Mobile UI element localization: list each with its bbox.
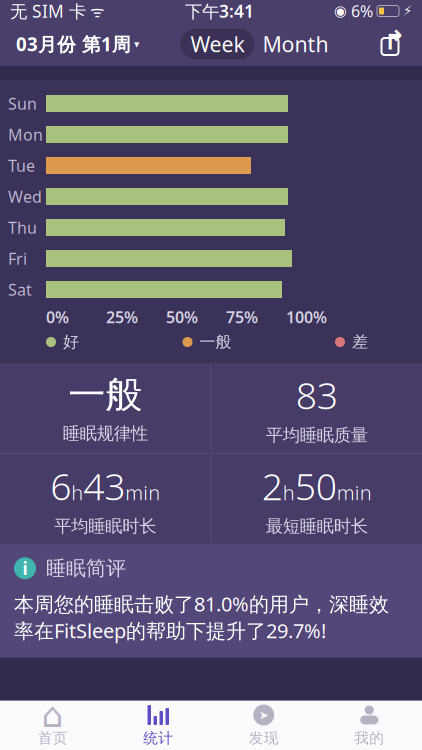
- staticText: 无 SIM 卡: [10, 0, 86, 22]
- staticText: 6%: [351, 0, 373, 22]
- staticText: 0%: [46, 306, 69, 328]
- staticText: Tue: [8, 155, 35, 176]
- staticText: 睡眠规律性: [63, 423, 148, 444]
- staticText: Wed: [8, 186, 42, 207]
- staticText: 50%: [166, 306, 198, 328]
- staticText: Sat: [8, 279, 32, 300]
- staticText: ➤: [259, 708, 269, 722]
- staticText: 下午3:41: [185, 0, 254, 22]
- staticText: min: [337, 479, 372, 506]
- staticText: 我的: [354, 729, 384, 747]
- staticText: i: [22, 557, 27, 580]
- staticText: 平均睡眠时长: [54, 516, 156, 537]
- staticText: ᯤ: [86, 0, 105, 22]
- staticText: h: [283, 479, 295, 506]
- staticText: h: [71, 479, 83, 506]
- staticText: 25%: [106, 306, 138, 328]
- staticText: 50: [295, 461, 337, 511]
- staticText: 统计: [143, 729, 173, 747]
- staticText: 一般: [68, 372, 142, 418]
- button[interactable]: 分享: [368, 25, 412, 63]
- staticText: ▾: [134, 38, 139, 50]
- staticText: 发现: [249, 729, 279, 747]
- button[interactable]: Week: [180, 29, 254, 59]
- button[interactable]: ➤: [211, 701, 316, 750]
- button[interactable]: 统计: [105, 701, 211, 750]
- staticText: 03月份 第1周: [16, 32, 131, 56]
- staticText: Month: [262, 30, 328, 58]
- staticText: 好: [63, 332, 79, 352]
- staticText: 一般: [199, 332, 231, 352]
- button[interactable]: 03月份 第1周: [10, 24, 145, 64]
- staticText: 100%: [286, 306, 327, 328]
- staticText: 差: [352, 332, 368, 352]
- button[interactable]: ⌂: [0, 701, 105, 750]
- staticText: 83: [296, 370, 338, 420]
- staticText: Fri: [8, 248, 27, 269]
- staticText: ⌂: [42, 695, 64, 735]
- staticText: Mon: [8, 124, 43, 145]
- staticText: ↱: [383, 25, 405, 56]
- staticText: Sun: [8, 93, 37, 114]
- staticText: 43: [83, 461, 125, 511]
- staticText: 75%: [226, 306, 258, 328]
- staticText: 平均睡眠质量: [266, 425, 368, 446]
- staticText: 本周您的睡眠击败了81.0%的用户，深睡效率在FitSleep的帮助下提升了29…: [14, 591, 389, 644]
- staticText: ⚡︎: [403, 3, 412, 18]
- staticText: 2: [262, 461, 283, 511]
- staticText: 6: [50, 461, 71, 511]
- staticText: Thu: [8, 217, 37, 238]
- button[interactable]: Month: [258, 29, 332, 59]
- staticText: min: [125, 479, 160, 506]
- staticText: ◉: [334, 3, 347, 19]
- button[interactable]: 我的: [316, 701, 422, 750]
- staticText: 睡眠简评: [46, 556, 126, 581]
- staticText: Week: [190, 30, 244, 58]
- staticText: 最短睡眠时长: [266, 516, 368, 537]
- staticText: 首页: [38, 729, 68, 747]
